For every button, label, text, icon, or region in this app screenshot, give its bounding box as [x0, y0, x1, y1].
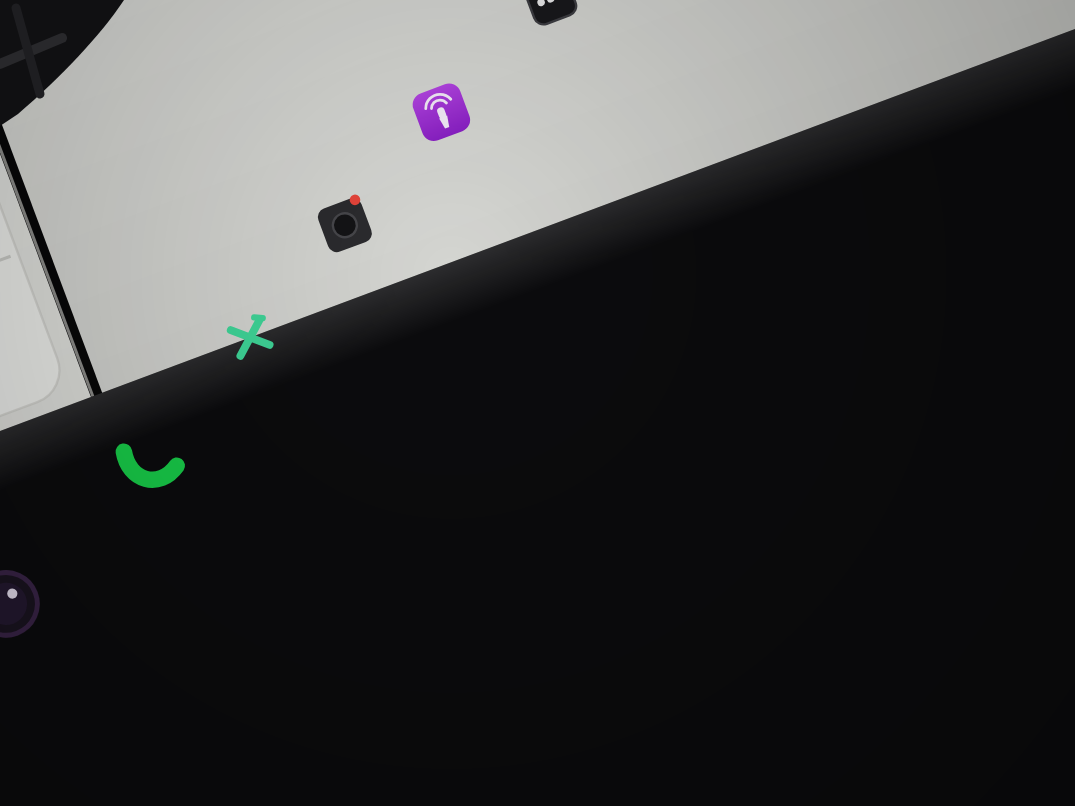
button[interactable]: Play next track: [100, 450, 190, 530]
button[interactable]: Charging notification: [0, 168, 440, 288]
button[interactable]: Media Source: [0, 300, 560, 400]
button[interactable]: Wi-Fi: [628, 72, 808, 142]
button[interactable]: Bluetooth: [636, 160, 836, 232]
button[interactable]: Trips: [604, 0, 784, 70]
